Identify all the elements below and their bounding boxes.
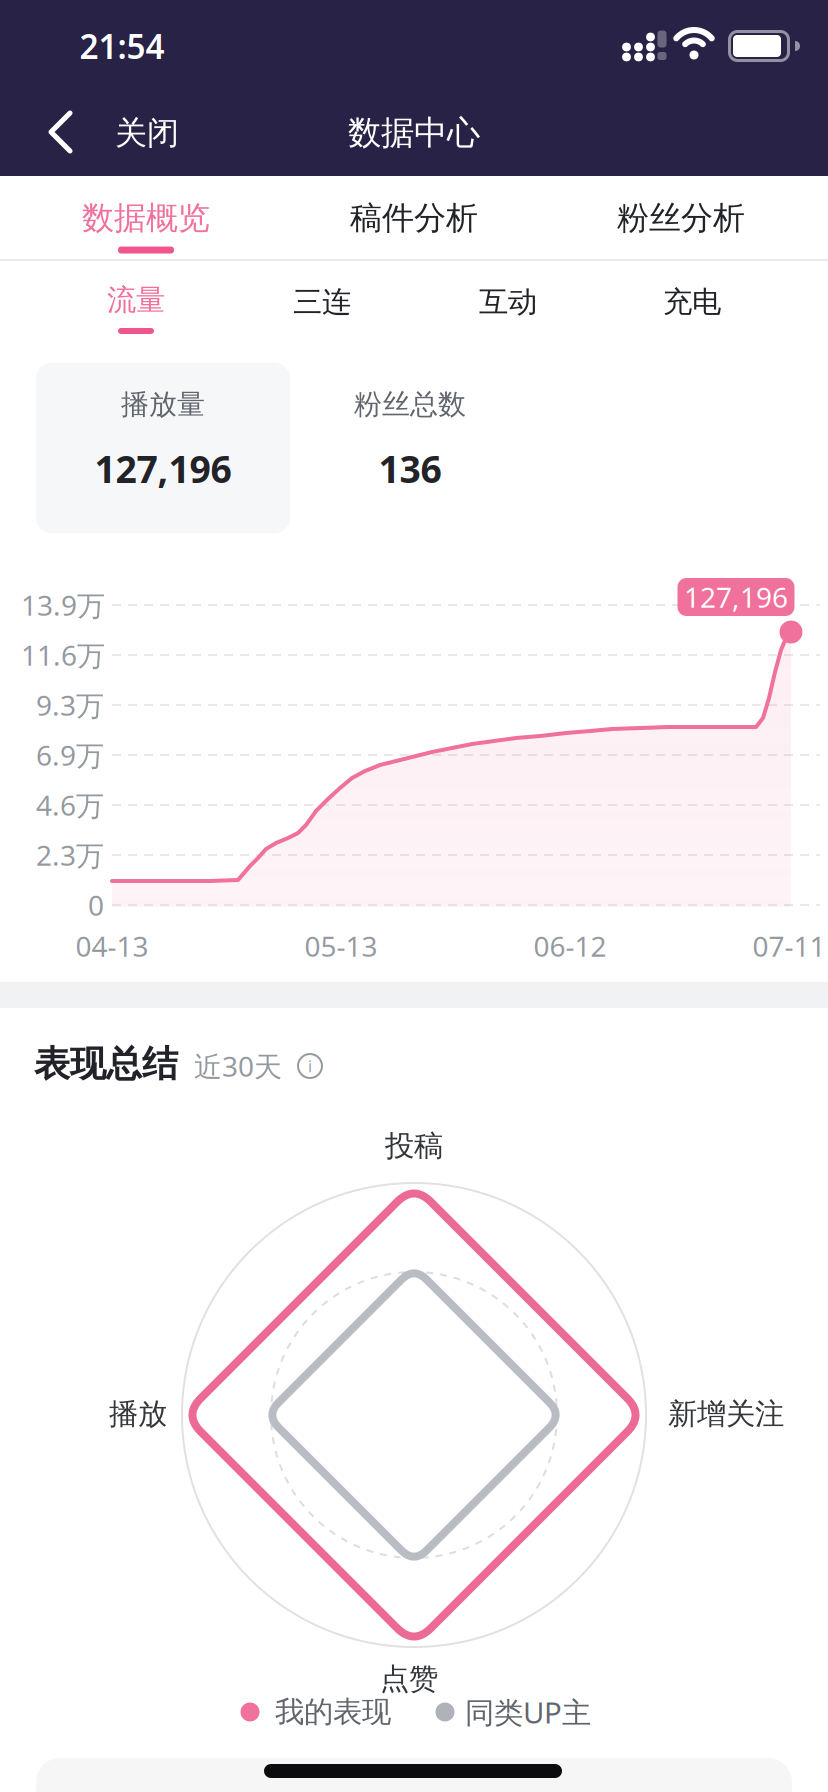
staticText: 充电 [663,284,721,320]
button[interactable]: 关闭 [115,113,179,153]
staticText: 三连 [293,284,351,320]
button[interactable]: 返回 [48,111,74,155]
staticText: 粉丝总数 [354,387,466,422]
staticText: 127,196 [94,444,231,493]
staticText: 11.6万 [21,636,105,674]
staticText: 我的表现 [275,1694,391,1730]
staticText: 07-11 [752,927,825,965]
button[interactable]: 粉丝分析 [581,176,781,260]
staticText: 稿件分析 [350,198,478,238]
staticText: 表现总结 [34,1042,178,1086]
staticText: 4.6万 [36,786,104,824]
button[interactable]: 流量 [76,260,196,344]
button[interactable]: 数据概览 [46,176,246,260]
staticText: 数据中心 [348,112,480,153]
button[interactable]: 三连 [262,260,382,344]
staticText: 互动 [479,284,537,320]
staticText: 127,196 [684,578,788,616]
staticText: 0 [88,886,104,924]
staticText: 粉丝分析 [617,198,745,238]
staticText: 13.9万 [21,586,105,624]
button[interactable]: 粉丝总数 [286,362,534,533]
staticText: 关闭 [115,113,179,153]
button[interactable]: 稿件分析 [314,176,514,260]
staticText: i [308,1055,312,1077]
staticText: 近30天 [194,1047,282,1085]
button[interactable]: 互动 [448,260,568,344]
staticText: 04-13 [75,927,148,965]
button[interactable]: 说明 [296,1052,324,1080]
staticText: 投稿 [385,1128,443,1164]
staticText: 6.9万 [36,736,104,774]
staticText: 21:54 [79,24,164,68]
staticText: 136 [378,444,441,493]
staticText: 播放量 [121,387,205,422]
staticText: 数据概览 [82,198,210,238]
button[interactable]: 充电 [632,260,752,344]
staticText: 06-12 [533,927,606,965]
staticText: 同类UP主 [465,1692,591,1731]
staticText: 播放 [109,1396,167,1432]
staticText: 2.3万 [36,836,104,874]
staticText: 点赞 [380,1661,438,1697]
staticText: 9.3万 [36,686,104,724]
staticText: 新增关注 [668,1396,784,1432]
staticText: 流量 [107,282,165,318]
button[interactable]: 播放量 [36,362,290,533]
staticText: 05-13 [304,927,377,965]
